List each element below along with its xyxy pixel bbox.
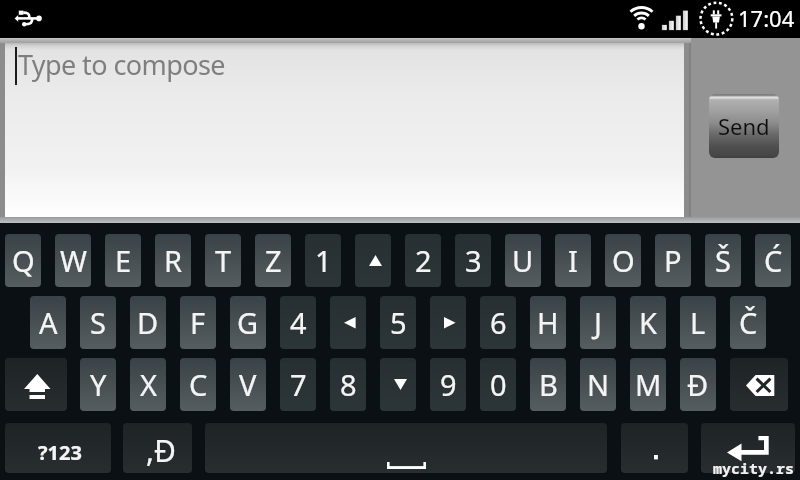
button[interactable]: Š xyxy=(705,234,741,287)
button[interactable]: H xyxy=(530,296,566,349)
button[interactable]: G xyxy=(230,296,266,349)
button[interactable]: Space xyxy=(205,423,607,473)
staticText: L xyxy=(690,303,706,342)
staticText: Q xyxy=(12,241,35,280)
staticText: H xyxy=(537,303,559,342)
staticText: O xyxy=(612,241,635,280)
staticText: W xyxy=(60,241,87,280)
staticText: M xyxy=(635,365,662,404)
staticText: P xyxy=(664,241,682,280)
staticText: J xyxy=(594,303,602,342)
staticText: 7 xyxy=(290,365,307,404)
staticText: D xyxy=(137,303,159,342)
staticText: V xyxy=(239,365,257,404)
staticText: ,Đ xyxy=(146,430,176,471)
button[interactable]: M xyxy=(630,358,666,411)
staticText: 4 xyxy=(290,303,307,342)
button[interactable]: D xyxy=(130,296,166,349)
staticText: C xyxy=(189,365,208,404)
staticText: 1 xyxy=(315,241,332,280)
button[interactable]: Send xyxy=(709,94,779,158)
staticText: Š xyxy=(715,241,731,280)
button[interactable]: X xyxy=(130,358,166,411)
button[interactable]: Backspace xyxy=(730,358,788,411)
button[interactable]: J xyxy=(580,296,616,349)
staticText: ?123 xyxy=(38,439,82,466)
staticText: 9 xyxy=(440,365,457,404)
staticText: K xyxy=(639,303,657,342)
button[interactable]: E xyxy=(105,234,141,287)
staticText: X xyxy=(140,365,157,404)
button[interactable]: F xyxy=(180,296,216,349)
button[interactable]: Č xyxy=(730,296,766,349)
button[interactable]: Type to compose xyxy=(5,43,684,217)
button[interactable]: Q xyxy=(5,234,41,287)
staticText: I xyxy=(568,241,578,280)
button[interactable]: Period xyxy=(621,423,688,473)
staticText: Z xyxy=(265,241,282,280)
button[interactable]: 0 xyxy=(480,358,516,411)
button[interactable]: Y xyxy=(80,358,116,411)
button[interactable]: 3 xyxy=(455,234,491,287)
button[interactable]: Ć xyxy=(755,234,791,287)
button[interactable]: V xyxy=(230,358,266,411)
button[interactable]: 9 xyxy=(430,358,466,411)
button[interactable]: 8 xyxy=(330,358,366,411)
button[interactable]: C xyxy=(180,358,216,411)
staticText: mycity.rs xyxy=(713,458,795,478)
button[interactable]: Right xyxy=(430,296,466,349)
button[interactable]: L xyxy=(680,296,716,349)
button[interactable]: Down xyxy=(380,358,416,411)
staticText: 17:04 xyxy=(738,3,795,33)
staticText: B xyxy=(539,365,558,404)
button[interactable]: Shift xyxy=(5,358,67,411)
button[interactable]: U xyxy=(505,234,541,287)
button[interactable]: 6 xyxy=(480,296,516,349)
button[interactable]: ?123 xyxy=(5,423,111,473)
staticText: T xyxy=(215,241,232,280)
button[interactable]: O xyxy=(605,234,641,287)
staticText: S xyxy=(90,303,106,342)
button[interactable]: ,Đ xyxy=(123,423,192,473)
button[interactable]: Enter xyxy=(701,423,795,473)
button[interactable]: A xyxy=(30,296,66,349)
button[interactable]: Z xyxy=(255,234,291,287)
button[interactable]: T xyxy=(205,234,241,287)
button[interactable]: B xyxy=(530,358,566,411)
staticText: U xyxy=(512,241,534,280)
staticText: A xyxy=(39,303,58,342)
button[interactable]: I xyxy=(555,234,591,287)
button[interactable]: P xyxy=(655,234,691,287)
staticText: 5 xyxy=(390,303,407,342)
button[interactable]: S xyxy=(80,296,116,349)
staticText: Send xyxy=(718,111,770,141)
button[interactable]: N xyxy=(580,358,616,411)
staticText: 2 xyxy=(415,241,432,280)
staticText: Č xyxy=(739,303,758,342)
button[interactable]: K xyxy=(630,296,666,349)
staticText: E xyxy=(115,241,132,280)
staticText: R xyxy=(164,241,183,280)
button[interactable]: Up xyxy=(355,234,391,287)
button[interactable]: Left xyxy=(330,296,366,349)
staticText: F xyxy=(190,303,206,342)
button[interactable]: W xyxy=(55,234,91,287)
staticText: G xyxy=(237,303,259,342)
button[interactable]: 2 xyxy=(405,234,441,287)
staticText: N xyxy=(587,365,610,404)
staticText: 6 xyxy=(490,303,507,342)
button[interactable]: 1 xyxy=(305,234,341,287)
staticText: 0 xyxy=(490,365,507,404)
button[interactable]: 7 xyxy=(280,358,316,411)
staticText: Y xyxy=(90,365,107,404)
staticText: 3 xyxy=(465,241,482,280)
staticText: 8 xyxy=(340,365,357,404)
button[interactable]: R xyxy=(155,234,191,287)
staticText: Đ xyxy=(687,365,709,404)
staticText: Type to compose xyxy=(18,46,225,83)
button[interactable]: Đ xyxy=(680,358,716,411)
button[interactable]: 4 xyxy=(280,296,316,349)
staticText: Ć xyxy=(764,241,783,280)
button[interactable]: 5 xyxy=(380,296,416,349)
